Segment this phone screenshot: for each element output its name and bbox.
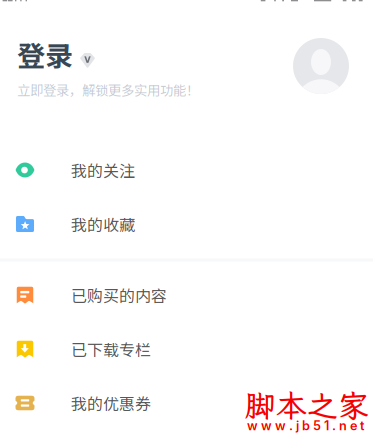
button[interactable]: 我的关注 (0, 143, 373, 197)
staticText: 我的关注 (71, 158, 135, 182)
staticText: 脚本之家 (245, 385, 369, 425)
button[interactable]: 已下载专栏 (0, 322, 373, 376)
staticText: 已下载专栏 (71, 337, 151, 361)
staticText: 登录 (17, 34, 73, 74)
staticText: 立即登录，解锁更多实用功能！ (17, 80, 199, 99)
button[interactable]: 我的优惠券 (0, 376, 373, 430)
staticText: 我的优惠券 (71, 391, 151, 415)
staticText: 我的收藏 (71, 212, 135, 236)
staticText: 已购买的内容 (71, 283, 167, 307)
staticText: w w w . j b 5 1 . n e t (247, 418, 364, 433)
button[interactable]: 我的收藏 (0, 197, 373, 251)
button[interactable]: 已购买的内容 (0, 268, 373, 322)
